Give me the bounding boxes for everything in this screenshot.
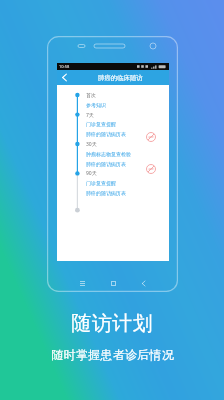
button[interactable]: Recents bbox=[67, 274, 98, 292]
button[interactable]: 参考知识 bbox=[57, 100, 169, 110]
button[interactable]: 门诊复查提醒 bbox=[57, 119, 169, 129]
staticText: 肺癌的随访病历表 bbox=[86, 161, 126, 167]
button[interactable]: Back bbox=[128, 274, 158, 292]
staticText: 7天 bbox=[86, 112, 94, 119]
button[interactable]: 7天 bbox=[57, 110, 169, 120]
button[interactable]: 90天 bbox=[57, 168, 169, 178]
button[interactable]: 肺癌的随访病历表 bbox=[57, 188, 169, 198]
button[interactable]: Home bbox=[98, 274, 128, 292]
staticText: 90天 bbox=[86, 170, 97, 177]
staticText: 参考知识 bbox=[86, 102, 106, 108]
staticText: 随访计划 bbox=[71, 311, 153, 336]
button[interactable]: 肿瘤标志物复查检验 bbox=[57, 149, 169, 159]
staticText: 10:58 bbox=[59, 64, 70, 69]
button[interactable]: 首次 bbox=[57, 90, 169, 100]
staticText: 门诊复查提醒 bbox=[86, 180, 116, 186]
staticText: 随时掌握患者诊后情况 bbox=[51, 347, 174, 362]
staticText: 肺癌的随访病历表 bbox=[86, 131, 126, 137]
staticText: 首次 bbox=[86, 92, 96, 98]
staticText: 门诊复查提醒 bbox=[86, 121, 116, 127]
button[interactable]: 30天 bbox=[57, 139, 169, 149]
staticText: 肺癌的临床随访 bbox=[98, 74, 143, 82]
button[interactable]: 门诊复查提醒 bbox=[57, 178, 169, 188]
staticText: 肿瘤标志物复查检验 bbox=[86, 151, 131, 157]
button[interactable]: 肺癌的随访病历表 bbox=[57, 129, 169, 139]
button[interactable]: 肺癌的随访病历表 bbox=[57, 159, 169, 169]
button[interactable]: 返回 bbox=[57, 70, 71, 85]
staticText: 肺癌的随访病历表 bbox=[86, 190, 126, 196]
staticText: 30天 bbox=[86, 141, 97, 148]
